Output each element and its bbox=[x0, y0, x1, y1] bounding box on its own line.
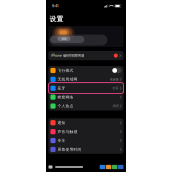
button[interactable]: 蓝牙 bbox=[48, 84, 124, 93]
staticText: 打开 bbox=[112, 86, 118, 90]
button[interactable]: 无线局域网 bbox=[48, 75, 124, 84]
staticText: 屏幕使用时间 bbox=[57, 147, 81, 152]
staticText: 通知 bbox=[57, 120, 65, 125]
button[interactable]: 声音与触感 bbox=[48, 127, 124, 136]
staticText: 声音与触感 bbox=[57, 129, 77, 134]
staticText: 个人热点 bbox=[57, 104, 73, 108]
button[interactable]: 飞行模式 bbox=[48, 66, 124, 75]
button[interactable]: 通知 bbox=[48, 118, 124, 127]
button[interactable]: 屏幕使用时间 bbox=[48, 145, 124, 154]
staticText: 设置 bbox=[50, 15, 64, 23]
staticText: 9:41 bbox=[52, 4, 58, 8]
staticText: 蓝牙 bbox=[57, 86, 65, 91]
staticText: 关闭 bbox=[112, 104, 118, 108]
staticText: 飞行模式 bbox=[57, 68, 73, 73]
button[interactable]: iPhone 储存空间即将满 bbox=[46, 51, 126, 60]
button[interactable]: 蜂窝网络 bbox=[48, 93, 124, 102]
staticText: 无线局域网 bbox=[57, 77, 77, 82]
button[interactable]: 专注 bbox=[48, 136, 124, 145]
staticText: 蜂窝网络 bbox=[57, 95, 73, 99]
button[interactable] bbox=[46, 26, 126, 47]
staticText: 未连接 bbox=[109, 77, 118, 81]
staticText: 专注 bbox=[57, 138, 65, 143]
staticText: iPhone 储存空间即将满 bbox=[51, 53, 84, 58]
button[interactable]: 个人热点 bbox=[48, 102, 124, 110]
